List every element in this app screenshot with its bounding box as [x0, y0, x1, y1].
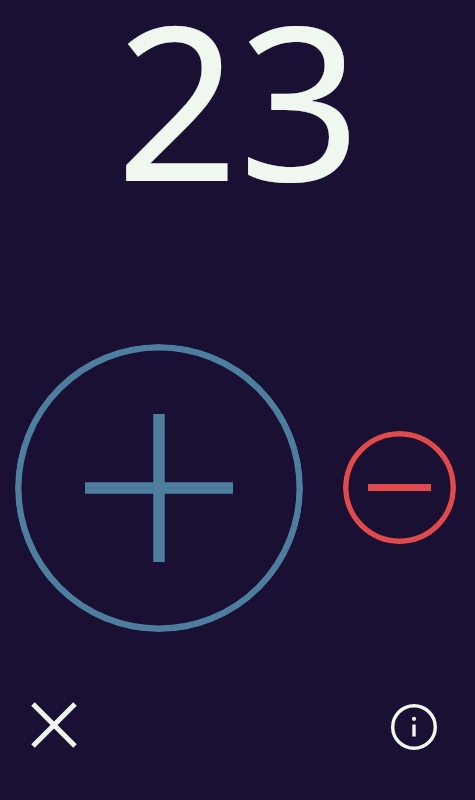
button[interactable]: Increment — [15, 344, 303, 632]
button[interactable]: Info — [380, 693, 448, 761]
button[interactable]: Decrement — [343, 431, 456, 544]
button[interactable]: Close — [20, 691, 88, 759]
staticText: 23 — [116, 0, 361, 242]
